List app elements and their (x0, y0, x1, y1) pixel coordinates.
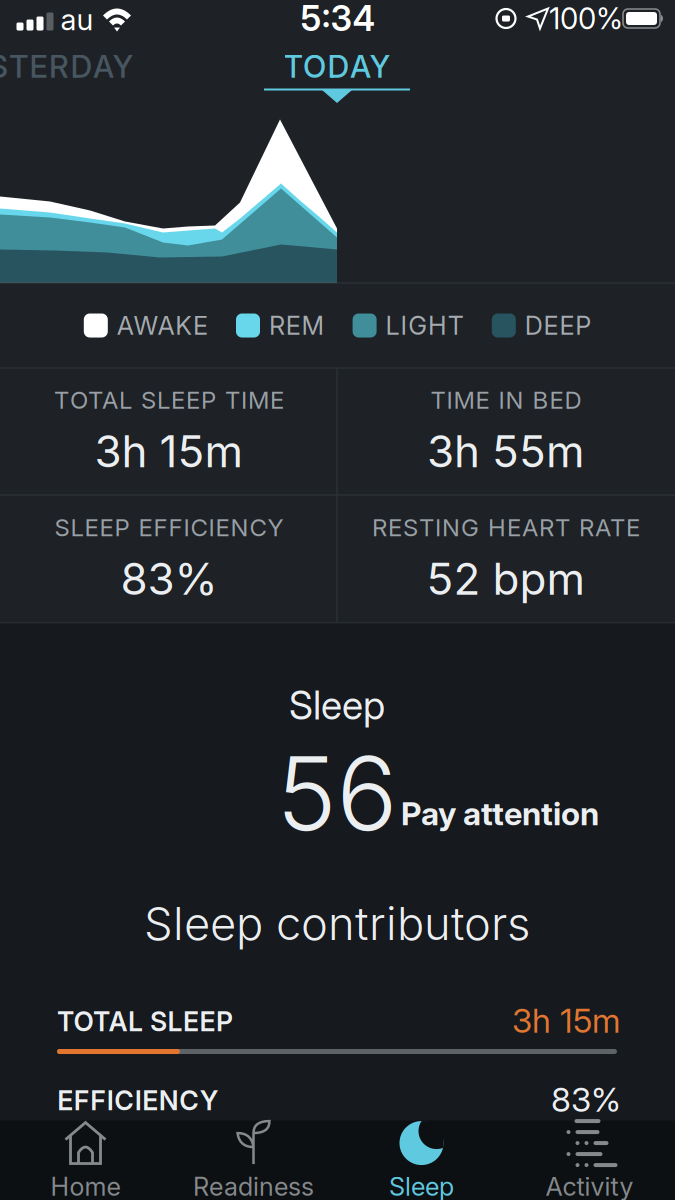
staticText: 3h 15m (512, 1001, 620, 1040)
staticText: TOTAL SLEEP TIME (54, 386, 284, 414)
staticText: EFFICIENCY (57, 1085, 219, 1116)
staticText: Sleep contributors (144, 897, 530, 950)
staticText: 83% (120, 553, 217, 605)
staticText: RESTING HEART RATE (372, 513, 640, 542)
staticText: au (60, 2, 93, 37)
staticText: Home (50, 1172, 120, 1200)
staticText: Pay attention (401, 795, 599, 832)
staticText: REM (269, 311, 325, 340)
staticText: 52 bpm (426, 553, 585, 605)
staticText: LIGHT (386, 311, 464, 340)
staticText: 5:34 (300, 0, 375, 39)
button[interactable]: TODAY (262, 43, 412, 89)
staticText: Sleep (289, 683, 385, 728)
staticText: Sleep (389, 1172, 454, 1200)
button[interactable]: YESTERDAY (0, 48, 133, 85)
staticText: TOTAL SLEEP (57, 1006, 233, 1037)
button[interactable]: Readiness (169, 1120, 337, 1200)
button[interactable]: Home (1, 1120, 169, 1200)
staticText: 3h 55m (427, 425, 585, 477)
staticText: TIME IN BED (430, 386, 581, 414)
staticText: Readiness (193, 1172, 314, 1200)
staticText: 83% (551, 1080, 621, 1119)
staticText: AWAKE (117, 311, 208, 340)
staticText: 3h 15m (94, 425, 243, 477)
staticText: 56 (276, 734, 397, 853)
staticText: DEEP (525, 311, 591, 340)
staticText: SLEEP EFFICIENCY (54, 513, 283, 542)
button[interactable]: Activity (505, 1120, 673, 1200)
button[interactable]: Sleep (337, 1120, 505, 1200)
staticText: 100% (549, 1, 623, 36)
staticText: TODAY (283, 48, 390, 85)
staticText: Activity (545, 1172, 633, 1200)
staticText: YESTERDAY (0, 48, 133, 85)
